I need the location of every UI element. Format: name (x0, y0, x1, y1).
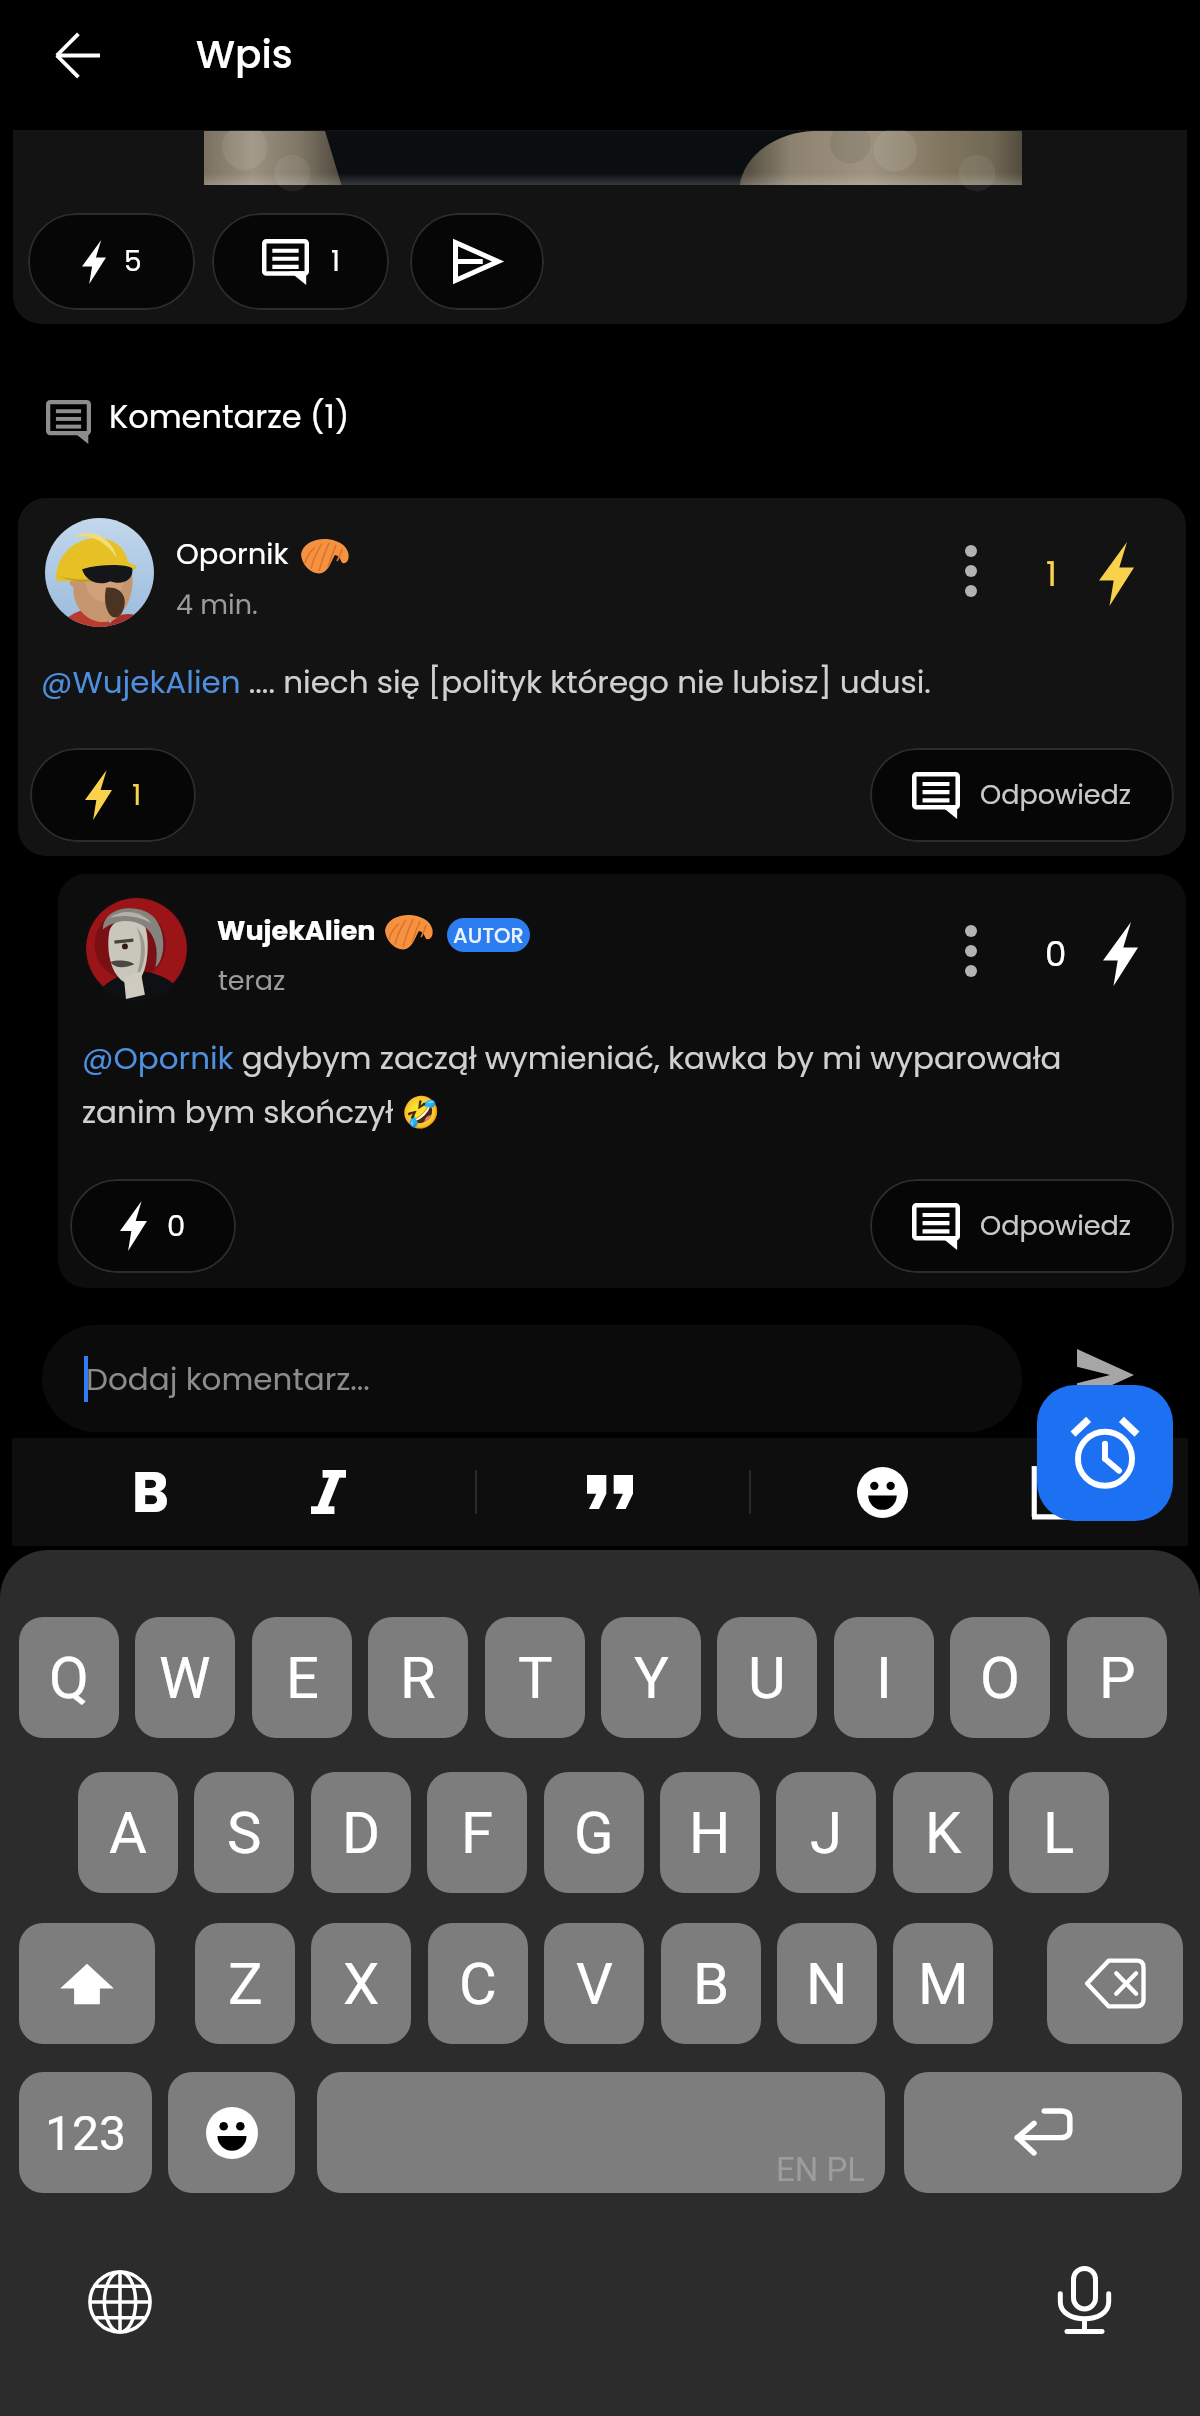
staticText: @WujekAlien .... niech się [polityk któr… (41, 660, 1101, 703)
button[interactable]: V (544, 1923, 644, 2044)
staticText: 0 (167, 1206, 186, 1247)
button[interactable]: B (661, 1923, 761, 2044)
staticText: Wpis (196, 27, 293, 82)
button[interactable]: C (428, 1923, 528, 2044)
staticText: K (925, 1799, 962, 1867)
button[interactable]: M (893, 1923, 993, 2044)
staticText: @Opornik gdybym zaczął wymieniać, kawka … (82, 1036, 1102, 1134)
button[interactable]: Backspace (1047, 1923, 1183, 2044)
button[interactable]: Quote (578, 1444, 642, 1540)
button[interactable]: 5 (28, 213, 195, 310)
staticText: Z (228, 1950, 263, 2018)
button[interactable]: G (544, 1772, 644, 1893)
staticText: Opornik (176, 534, 289, 575)
staticText: D (342, 1799, 381, 1867)
staticText: 1 (132, 775, 142, 816)
button[interactable]: 0 (70, 1179, 236, 1273)
button[interactable]: S (194, 1772, 294, 1893)
button[interactable]: H (660, 1772, 760, 1893)
button[interactable]: R (368, 1617, 468, 1738)
button[interactable]: Space (317, 2072, 885, 2193)
button[interactable]: J (776, 1772, 876, 1893)
staticText: Y (634, 1644, 669, 1712)
button[interactable]: Enter (904, 2072, 1182, 2193)
staticText: WujekAlien (217, 912, 376, 950)
button[interactable]: Share (410, 213, 544, 310)
button[interactable]: Odpowiedz (870, 748, 1174, 842)
staticText: M (918, 1950, 969, 2018)
staticText: 1 (331, 242, 340, 281)
staticText: EN PL (776, 2150, 866, 2189)
button[interactable]: K (893, 1772, 993, 1893)
staticText: R (400, 1644, 436, 1712)
button[interactable]: Upvote (1084, 918, 1156, 990)
staticText: Odpowiedz (980, 776, 1132, 814)
button[interactable]: AUTOR (447, 918, 530, 952)
button[interactable]: X (311, 1923, 411, 2044)
button[interactable]: Z (195, 1923, 295, 2044)
staticText: 0 (1045, 930, 1067, 978)
staticText: P (1099, 1644, 1136, 1712)
button[interactable]: Voice input (1046, 2264, 1122, 2340)
staticText: A (109, 1799, 147, 1867)
button[interactable]: Alarm (1037, 1385, 1173, 1521)
staticText: AUTOR (453, 921, 524, 950)
staticText: V (576, 1950, 613, 2018)
button[interactable]: Shift (19, 1923, 155, 2044)
button[interactable]: O (950, 1617, 1050, 1738)
staticText: J (810, 1799, 843, 1867)
staticText: L (1043, 1799, 1075, 1867)
staticText: H (689, 1799, 731, 1867)
button[interactable]: More options (940, 920, 1002, 982)
button[interactable]: More options (940, 540, 1002, 602)
staticText: C (459, 1950, 497, 2018)
button[interactable]: A (78, 1772, 178, 1893)
button[interactable]: P (1067, 1617, 1167, 1738)
staticText: Komentarze (1) (109, 394, 350, 439)
button[interactable]: Change language (82, 2264, 158, 2340)
button[interactable]: W (135, 1617, 235, 1738)
staticText: Dodaj komentarz... (86, 1357, 370, 1400)
button[interactable]: Send (1055, 1340, 1151, 1436)
staticText: W (159, 1644, 211, 1712)
button[interactable]: Y (601, 1617, 701, 1738)
staticText: X (343, 1950, 380, 2018)
button[interactable]: Back (33, 11, 121, 99)
button[interactable]: Bold (118, 1444, 182, 1540)
button[interactable]: D (311, 1772, 411, 1893)
button[interactable]: F (427, 1772, 527, 1893)
button[interactable]: T (485, 1617, 585, 1738)
staticText: U (748, 1644, 786, 1712)
button[interactable]: Image (1026, 1444, 1090, 1540)
staticText: S (227, 1799, 262, 1867)
button[interactable]: U (717, 1617, 817, 1738)
button[interactable]: E (252, 1617, 352, 1738)
staticText: B (693, 1950, 730, 2018)
button[interactable]: Emoji (850, 1444, 914, 1540)
button[interactable]: Q (19, 1617, 119, 1738)
button[interactable]: Emoji (168, 2072, 295, 2193)
button[interactable]: 1 (30, 748, 196, 842)
button[interactable]: 1 (212, 213, 389, 310)
button[interactable]: N (777, 1923, 877, 2044)
staticText: Q (49, 1644, 89, 1712)
staticText: B (132, 1453, 169, 1531)
staticText: teraz (218, 962, 286, 1000)
button[interactable]: I (834, 1617, 934, 1738)
staticText: F (461, 1799, 494, 1867)
staticText: I (876, 1644, 892, 1712)
button[interactable]: Numbers (19, 2072, 152, 2193)
staticText: T (518, 1644, 553, 1712)
staticText: O (980, 1644, 1020, 1712)
staticText: 1 (1046, 550, 1057, 598)
staticText: Odpowiedz (980, 1207, 1132, 1245)
staticText: G (574, 1799, 614, 1867)
button[interactable]: Italic (296, 1444, 360, 1540)
button[interactable]: Odpowiedz (870, 1179, 1174, 1273)
button[interactable]: Dodaj komentarz... (42, 1325, 1022, 1432)
staticText: 5 (124, 242, 142, 281)
button[interactable]: Upvote (1080, 538, 1152, 610)
staticText: N (806, 1950, 848, 2018)
staticText: 4 min. (176, 586, 258, 624)
button[interactable]: L (1009, 1772, 1109, 1893)
